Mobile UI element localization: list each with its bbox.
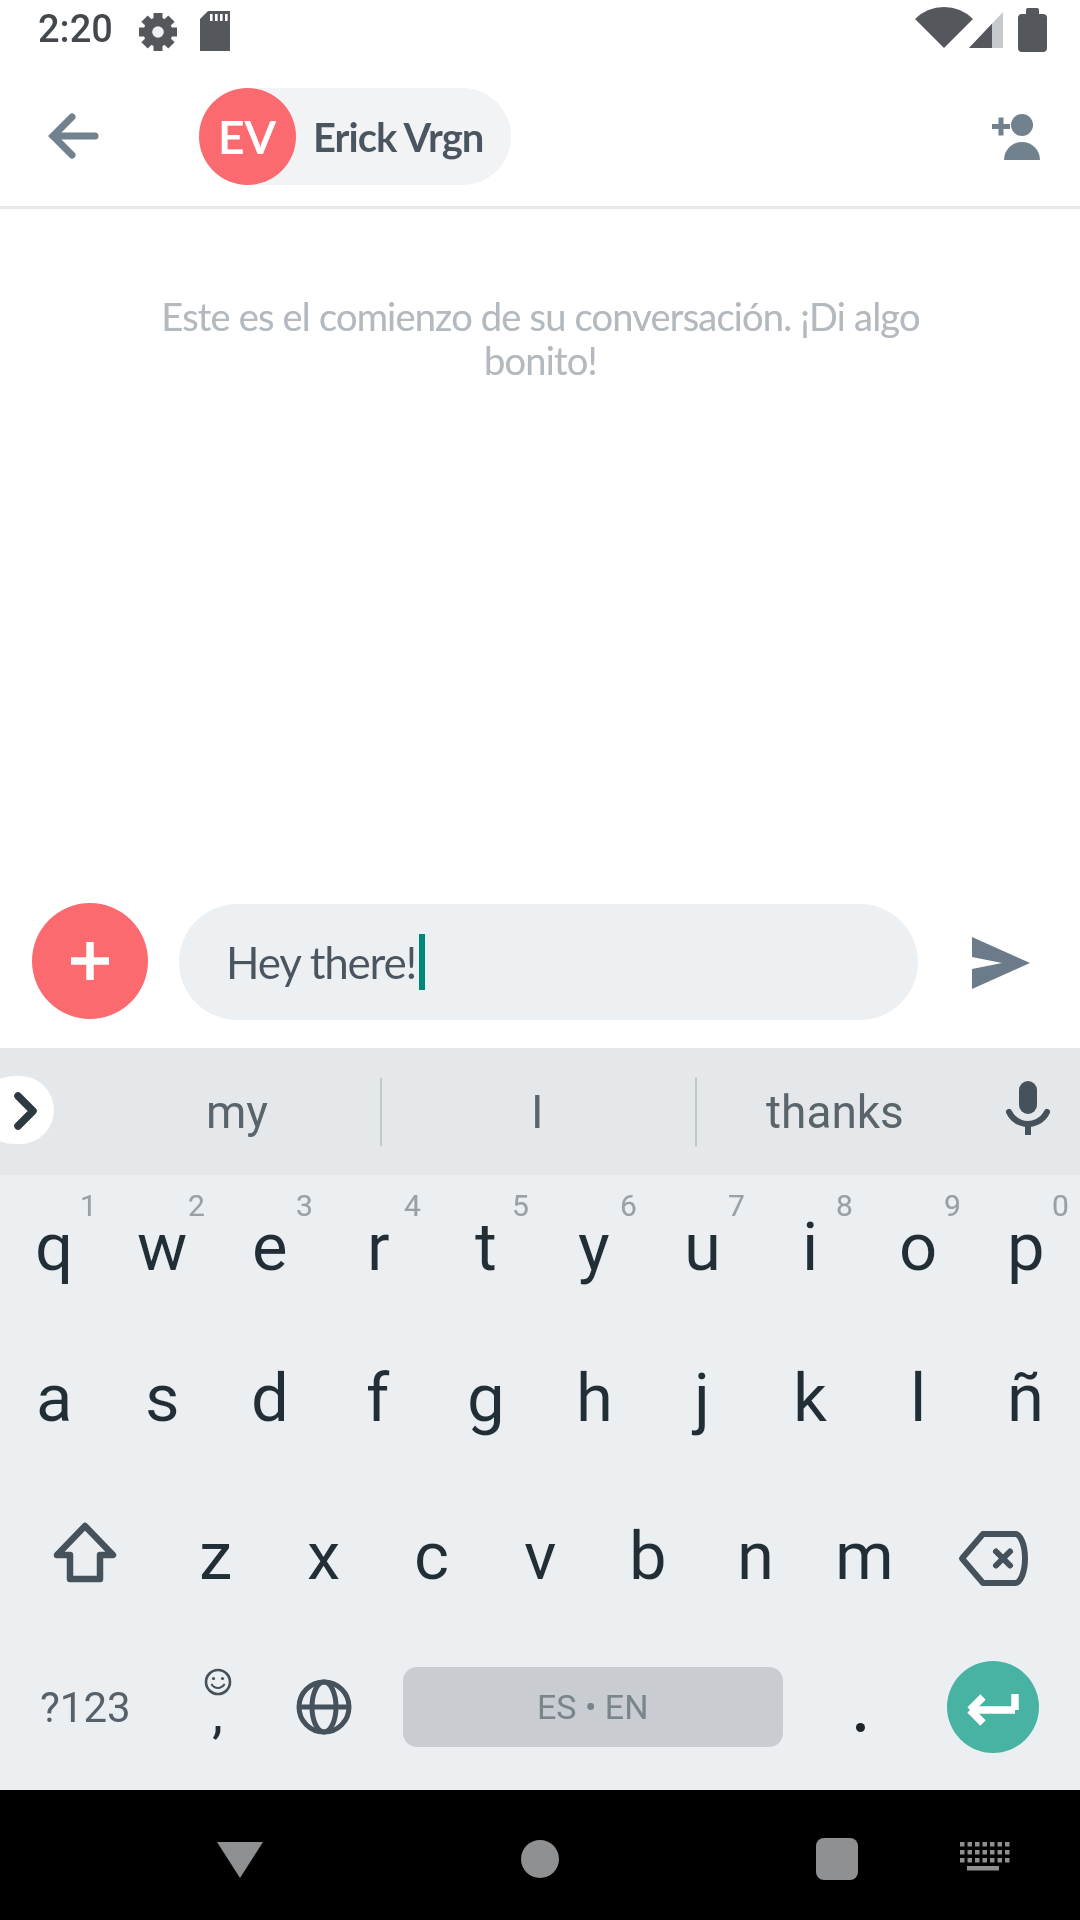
- staticText: d: [251, 1359, 289, 1438]
- staticText: n: [737, 1517, 775, 1596]
- staticText: z: [199, 1517, 233, 1596]
- staticText: u: [684, 1208, 721, 1287]
- staticText: t: [475, 1208, 497, 1287]
- staticText: 0: [1052, 1188, 1069, 1223]
- staticText: 8: [836, 1188, 853, 1223]
- staticText: j: [694, 1359, 711, 1438]
- staticText: g: [467, 1359, 505, 1438]
- staticText: p: [1007, 1208, 1045, 1287]
- staticText: 1: [80, 1188, 97, 1223]
- staticText: 4: [404, 1188, 421, 1223]
- staticText: r: [367, 1208, 390, 1287]
- staticText: 5: [512, 1188, 529, 1223]
- staticText: Hey there!: [226, 936, 417, 989]
- staticText: ñ: [1007, 1359, 1045, 1438]
- staticText: o: [899, 1208, 938, 1287]
- staticText: e: [252, 1208, 288, 1287]
- staticText: EV: [218, 109, 277, 164]
- staticText: s: [145, 1359, 180, 1438]
- staticText: 7: [728, 1188, 745, 1223]
- staticText: i: [802, 1208, 819, 1287]
- staticText: l: [910, 1359, 927, 1438]
- staticText: ,: [212, 1680, 224, 1746]
- staticText: ?123: [40, 1683, 131, 1732]
- staticText: ES • EN: [537, 1687, 649, 1727]
- staticText: f: [366, 1359, 390, 1438]
- staticText: b: [629, 1517, 667, 1596]
- staticText: 3: [296, 1188, 313, 1223]
- staticText: c: [414, 1517, 450, 1596]
- staticText: my: [206, 1085, 269, 1139]
- staticText: w: [137, 1208, 188, 1287]
- staticText: 6: [620, 1188, 637, 1223]
- staticText: x: [307, 1517, 341, 1596]
- staticText: 2:20: [38, 7, 113, 52]
- staticText: thanks: [766, 1085, 904, 1139]
- staticText: Erick Vrgn: [313, 113, 484, 161]
- staticText: y: [578, 1208, 610, 1287]
- staticText: k: [793, 1359, 827, 1438]
- staticText: m: [835, 1517, 894, 1596]
- staticText: 2: [188, 1188, 205, 1223]
- staticText: a: [36, 1359, 73, 1438]
- staticText: I: [531, 1085, 544, 1139]
- staticText: v: [524, 1517, 557, 1596]
- staticText: h: [576, 1359, 613, 1438]
- staticText: 9: [944, 1188, 961, 1223]
- staticText: q: [35, 1208, 74, 1287]
- staticText: Este es el comienzo de su conversación. …: [161, 293, 920, 383]
